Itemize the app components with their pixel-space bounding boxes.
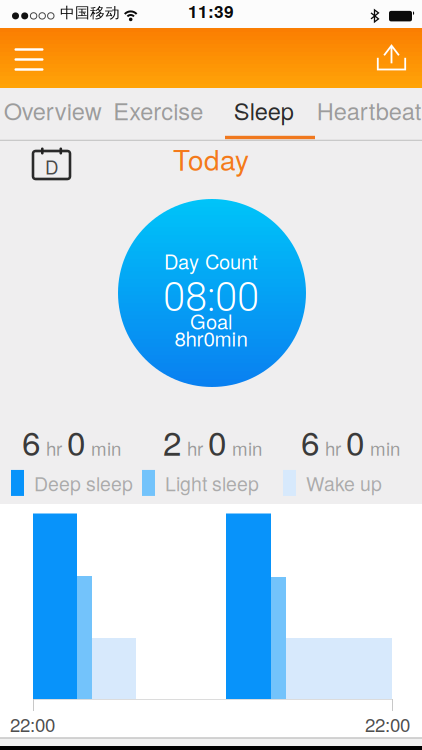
staticText: 8hr0min: [174, 323, 247, 352]
button[interactable]: Choose date: [26, 142, 76, 188]
staticText: 11:39: [188, 0, 234, 23]
staticText: 0: [208, 418, 227, 464]
staticText: Light sleep: [165, 469, 259, 497]
button[interactable]: Menu: [0, 28, 58, 88]
button[interactable]: Exercise: [105, 88, 211, 140]
staticText: 中国移动: [60, 4, 120, 22]
staticText: Today: [173, 139, 249, 178]
staticText: 6: [22, 418, 41, 464]
staticText: Overview: [4, 93, 102, 127]
staticText: 22:00: [10, 711, 55, 737]
staticText: 2: [163, 418, 182, 464]
staticText: Heartbeat: [317, 93, 422, 127]
staticText: Sleep: [234, 93, 294, 127]
button[interactable]: Share: [364, 28, 420, 88]
staticText: 08:00: [163, 274, 259, 321]
staticText: 6: [301, 418, 320, 464]
staticText: min: [370, 435, 400, 461]
staticText: Deep sleep: [34, 469, 133, 497]
staticText: hr: [187, 435, 203, 461]
button[interactable]: Heartbeat: [316, 88, 422, 140]
staticText: min: [232, 435, 262, 461]
staticText: hr: [325, 435, 341, 461]
staticText: min: [91, 435, 121, 461]
staticText: 22:00: [365, 711, 410, 737]
button[interactable]: Overview: [0, 88, 105, 140]
staticText: Goal: [190, 307, 232, 335]
button[interactable]: Sleep: [211, 88, 316, 140]
staticText: Wake up: [306, 469, 382, 497]
staticText: 0: [346, 418, 365, 464]
staticText: Exercise: [113, 93, 203, 127]
staticText: Day Count: [164, 247, 258, 275]
staticText: 0: [67, 418, 86, 464]
staticText: hr: [46, 435, 62, 461]
staticText: D: [45, 153, 58, 180]
